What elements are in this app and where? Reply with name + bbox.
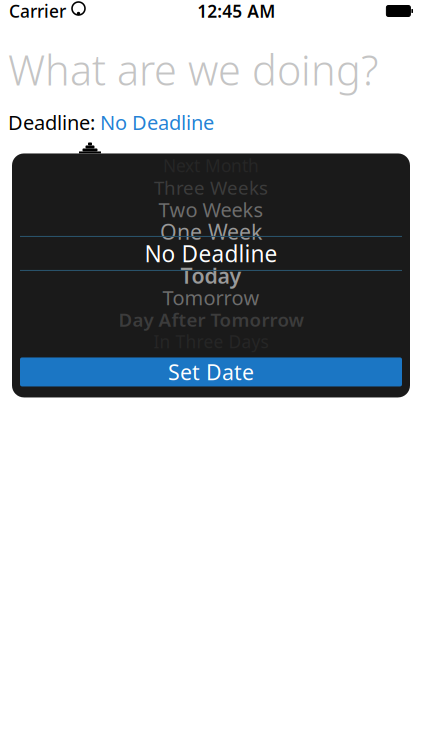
staticText: What are we doing? [8,42,379,97]
staticText: Today [180,261,241,290]
button[interactable]: Day After Tomorrow [12,308,410,330]
staticText: No Deadline [144,238,277,268]
staticText: In Three Days [153,330,268,353]
staticText: One Week [160,217,262,246]
button[interactable]: Set Date [20,357,402,386]
staticText: Day After Tomorrow [118,307,303,332]
staticText: Three Weeks [154,175,268,200]
button[interactable]: Three Weeks [12,176,410,198]
button[interactable]: Tomorrow [12,286,410,308]
button[interactable]: Today [12,264,410,286]
staticText: 12:45 AM [197,0,275,22]
button[interactable]: Two Weeks [12,198,410,220]
staticText: No Deadline [100,109,214,135]
staticText: Tomorrow [162,284,259,311]
button[interactable]: No Deadline [100,109,214,135]
button[interactable]: Next Month [12,154,410,176]
staticText: Carrier [9,0,66,22]
staticText: Two Weeks [158,196,263,223]
staticText: Next Month [163,154,259,177]
staticText: Deadline: [8,109,95,135]
staticText: Set Date [168,358,254,386]
button[interactable]: One Week [12,220,410,242]
button[interactable]: No Deadline [12,242,410,264]
